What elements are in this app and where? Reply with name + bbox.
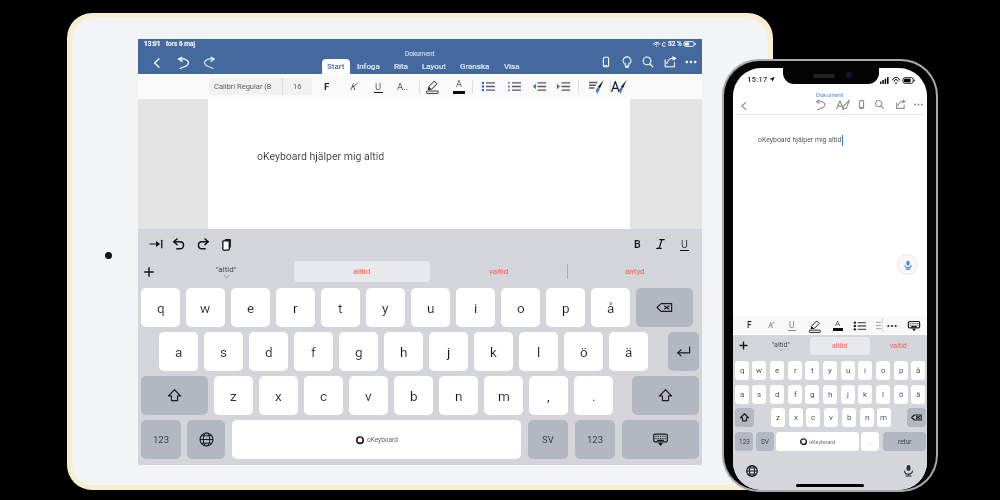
- button[interactable]: SV: [756, 432, 774, 451]
- button[interactable]: Visa: [497, 59, 527, 74]
- button[interactable]: å: [911, 361, 925, 380]
- button[interactable]: [632, 376, 699, 415]
- button[interactable]: Share: [894, 98, 907, 111]
- button[interactable]: Rita: [387, 59, 415, 74]
- button[interactable]: oKeyboard: [776, 432, 859, 451]
- button[interactable]: k: [474, 332, 513, 371]
- button[interactable]: A..: [395, 74, 411, 99]
- button[interactable]: K: [764, 316, 778, 334]
- button[interactable]: a: [159, 332, 198, 371]
- button[interactable]: v: [824, 408, 838, 427]
- button[interactable]: p: [546, 288, 585, 327]
- button[interactable]: valtid: [872, 335, 924, 357]
- button[interactable]: d: [249, 332, 288, 371]
- button[interactable]: Numbered list: [507, 79, 522, 94]
- button[interactable]: ä: [609, 332, 648, 371]
- button[interactable]: n: [860, 408, 874, 427]
- button[interactable]: Redo: [195, 236, 211, 252]
- button[interactable]: m: [484, 376, 523, 415]
- button[interactable]: x: [259, 376, 298, 415]
- button[interactable]: U: [785, 316, 799, 334]
- button[interactable]: .: [861, 432, 879, 451]
- button[interactable]: 123: [141, 420, 181, 459]
- button[interactable]: "altid": [753, 335, 809, 357]
- button[interactable]: Bulleted list: [853, 319, 867, 333]
- button[interactable]: 123: [735, 432, 753, 451]
- button[interactable]: K: [346, 74, 360, 99]
- button[interactable]: Highlight: [425, 79, 440, 94]
- button[interactable]: r: [788, 361, 802, 380]
- button[interactable]: z: [214, 376, 253, 415]
- button[interactable]: retur: [883, 432, 926, 451]
- button[interactable]: j: [841, 385, 855, 404]
- button[interactable]: f: [788, 385, 802, 404]
- button[interactable]: e: [770, 361, 784, 380]
- button[interactable]: Layout: [415, 59, 453, 74]
- button[interactable]: å: [591, 288, 630, 327]
- button[interactable]: alltid: [294, 261, 430, 282]
- button[interactable]: antyd: [585, 259, 685, 284]
- button[interactable]: d: [770, 385, 784, 404]
- button[interactable]: Decrease indent: [532, 79, 547, 94]
- button[interactable]: valtid: [449, 259, 549, 284]
- button[interactable]: [636, 288, 693, 327]
- button[interactable]: U: [371, 74, 385, 99]
- button[interactable]: Share: [662, 54, 678, 70]
- button[interactable]: [735, 408, 754, 427]
- button[interactable]: Draw: [836, 98, 850, 112]
- button[interactable]: Dictate: [897, 254, 918, 275]
- button[interactable]: p: [894, 361, 908, 380]
- button[interactable]: Add: [737, 339, 750, 352]
- button[interactable]: u: [411, 288, 450, 327]
- button[interactable]: Redo: [201, 55, 217, 71]
- button[interactable]: [187, 420, 225, 459]
- button[interactable]: [907, 408, 926, 427]
- button[interactable]: .: [574, 376, 613, 415]
- button[interactable]: r: [276, 288, 315, 327]
- button[interactable]: t: [805, 361, 819, 380]
- button[interactable]: a: [735, 385, 749, 404]
- button[interactable]: Hide keyboard: [907, 319, 921, 333]
- button[interactable]: [622, 420, 699, 459]
- button[interactable]: Search: [640, 54, 656, 70]
- button[interactable]: Granska: [453, 59, 497, 74]
- button[interactable]: g: [339, 332, 378, 371]
- button[interactable]: w: [752, 361, 766, 380]
- button[interactable]: [141, 376, 208, 415]
- button[interactable]: ö: [564, 332, 603, 371]
- button[interactable]: k: [858, 385, 872, 404]
- button[interactable]: [652, 229, 668, 259]
- button[interactable]: g: [805, 385, 819, 404]
- button[interactable]: F: [742, 316, 756, 334]
- button[interactable]: ö: [894, 385, 908, 404]
- button[interactable]: Language: [745, 464, 759, 478]
- button[interactable]: alltid: [810, 337, 870, 355]
- button[interactable]: Mobile view: [855, 98, 868, 111]
- button[interactable]: Back: [149, 55, 165, 71]
- button[interactable]: A: [831, 316, 845, 334]
- button[interactable]: More: [683, 54, 699, 70]
- button[interactable]: [668, 332, 699, 371]
- button[interactable]: c: [304, 376, 343, 415]
- button[interactable]: Tell me: [619, 54, 635, 70]
- button[interactable]: A: [452, 74, 466, 99]
- button[interactable]: More: [912, 98, 925, 111]
- button[interactable]: i: [456, 288, 495, 327]
- button[interactable]: i: [858, 361, 872, 380]
- button[interactable]: s: [204, 332, 243, 371]
- button[interactable]: "altid": [186, 259, 266, 284]
- button[interactable]: Start: [322, 59, 350, 74]
- button[interactable]: v: [349, 376, 388, 415]
- button[interactable]: b: [842, 408, 856, 427]
- button[interactable]: Search: [873, 98, 886, 111]
- button[interactable]: o: [501, 288, 540, 327]
- button[interactable]: 123: [575, 420, 615, 459]
- button[interactable]: Highlight: [808, 319, 822, 333]
- button[interactable]: z: [771, 408, 785, 427]
- button[interactable]: SV: [528, 420, 568, 459]
- button[interactable]: q: [735, 361, 749, 380]
- button[interactable]: Format painter: [588, 79, 604, 95]
- button[interactable]: Tab: [148, 236, 164, 252]
- button[interactable]: U: [676, 229, 692, 259]
- button[interactable]: Bulleted list: [481, 79, 496, 94]
